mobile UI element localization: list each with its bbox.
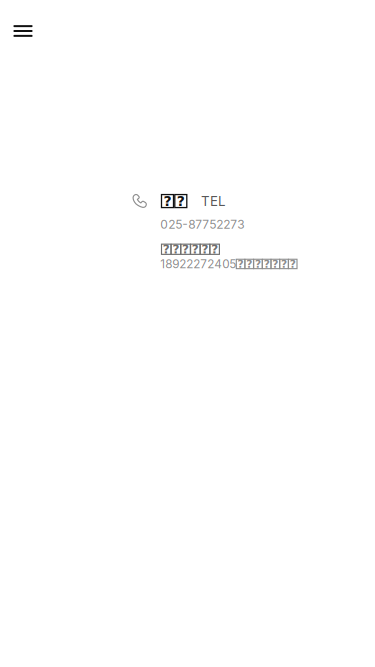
staticText: 18922272405 [160,257,236,271]
staticText: TEL [201,193,226,209]
staticText: ? [177,193,185,209]
staticText: ? [192,242,199,256]
button[interactable]: Menu [6,15,39,47]
staticText: ? [182,242,189,256]
staticText: ? [163,242,170,256]
staticText: ? [264,258,270,270]
staticText: ? [246,258,252,270]
staticText: ? [238,258,244,270]
staticText: ? [272,258,278,270]
staticText: ? [163,193,171,209]
staticText: ? [281,258,287,270]
staticText: ? [201,242,208,256]
button[interactable]: 销售部咨询电 18922272405（销售部咨询） [161,244,297,271]
button[interactable]: 电话 TEL 025-87752273 [161,193,244,232]
staticText: 025-87752273 [160,217,244,232]
staticText: ? [211,242,218,256]
staticText: ? [255,258,261,270]
staticText: ? [172,242,179,256]
staticText: ? [290,258,296,270]
